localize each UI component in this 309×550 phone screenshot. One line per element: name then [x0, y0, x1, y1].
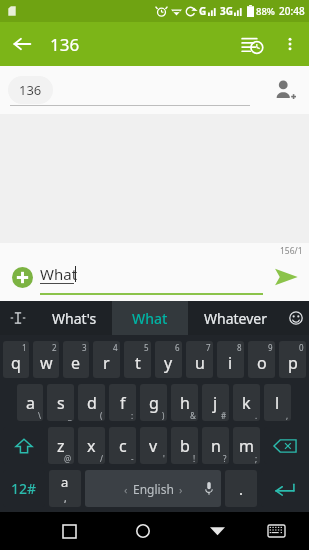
staticText: h — [180, 392, 190, 414]
button[interactable]: Shift — [3, 427, 44, 464]
button[interactable]: Backspace — [264, 427, 306, 464]
button[interactable]: Recents — [47, 512, 91, 550]
staticText: c — [119, 435, 127, 457]
button[interactable]: w — [33, 341, 59, 378]
button[interactable]: v — [140, 427, 167, 464]
button[interactable]: Scheduled messages — [231, 23, 273, 65]
staticText: _ — [68, 410, 72, 421]
button[interactable]: 136 — [8, 76, 53, 104]
button[interactable]: p — [279, 341, 306, 378]
staticText: - — [131, 453, 134, 464]
button[interactable]: u — [186, 341, 213, 378]
staticText: 136 — [50, 33, 80, 56]
button[interactable]: d — [78, 384, 105, 421]
button[interactable]: q — [3, 341, 29, 378]
staticText: f — [120, 392, 126, 414]
button[interactable]: More options — [273, 27, 307, 61]
button[interactable]: z — [48, 427, 74, 464]
button[interactable]: Attach — [6, 261, 38, 293]
staticText: k — [242, 392, 251, 414]
staticText: 4 — [113, 342, 118, 353]
button[interactable]: s — [47, 384, 74, 421]
button[interactable]: Whatever — [188, 301, 283, 335]
button[interactable]: What — [112, 301, 188, 335]
staticText: G — [199, 4, 207, 18]
button[interactable]: g — [140, 384, 167, 421]
button[interactable]: What's — [36, 301, 112, 335]
button[interactable]: e — [63, 341, 89, 378]
staticText: x — [87, 435, 96, 457]
button[interactable]: h — [171, 384, 198, 421]
staticText: 6 — [175, 342, 180, 353]
button[interactable]: m — [233, 427, 260, 464]
staticText: a — [61, 473, 69, 491]
button[interactable]: b — [171, 427, 198, 464]
staticText: What — [40, 264, 78, 284]
staticText: o — [257, 352, 267, 374]
button[interactable]: r — [93, 341, 120, 378]
button[interactable]: j — [202, 384, 229, 421]
button[interactable]: Add contact — [265, 70, 305, 110]
button[interactable]: Space — [85, 470, 221, 507]
button[interactable]: y — [155, 341, 182, 378]
button[interactable]: Accents — [49, 470, 81, 507]
button[interactable]: a — [17, 384, 43, 421]
staticText: . — [255, 410, 258, 421]
staticText: s — [57, 392, 65, 414]
button[interactable]: Emoji — [283, 301, 309, 335]
button[interactable]: Send — [263, 254, 309, 300]
staticText: ! — [193, 453, 196, 464]
staticText: ) — [162, 410, 165, 421]
staticText: 2 — [52, 342, 57, 353]
button[interactable]: Home — [121, 512, 165, 550]
button[interactable]: c — [109, 427, 136, 464]
staticText: 156/1 — [280, 245, 303, 257]
staticText: 0 — [299, 342, 304, 353]
button[interactable]: Enter — [261, 470, 306, 507]
staticText: 8 — [237, 342, 242, 353]
staticText: & — [190, 410, 196, 421]
staticText: English — [133, 481, 174, 497]
staticText: , — [286, 410, 289, 421]
button[interactable]: o — [248, 341, 275, 378]
button[interactable]: l — [264, 384, 291, 421]
staticText: What — [132, 309, 168, 328]
staticText: What's — [52, 309, 97, 328]
button[interactable]: Hide keyboard — [195, 512, 239, 550]
button[interactable]: Symbols — [3, 470, 45, 507]
staticText: ( — [100, 410, 103, 421]
staticText: p — [288, 352, 298, 374]
staticText: Whatever — [204, 309, 267, 328]
button[interactable]: i — [217, 341, 244, 378]
staticText: 7 — [206, 342, 211, 353]
staticText: n — [211, 435, 221, 457]
button[interactable]: x — [78, 427, 105, 464]
staticText: › — [179, 482, 183, 497]
button[interactable]: Switch keyboard — [254, 512, 298, 550]
staticText: . — [239, 479, 244, 499]
staticText: 88% — [256, 5, 275, 18]
button[interactable]: f — [109, 384, 136, 421]
staticText: m — [239, 435, 254, 457]
staticText: v — [149, 435, 158, 457]
staticText: t — [135, 352, 141, 374]
staticText: 1 — [22, 342, 27, 353]
staticText: q — [11, 352, 21, 374]
button[interactable]: n — [202, 427, 229, 464]
button[interactable]: Back — [0, 22, 44, 66]
staticText: i — [228, 352, 233, 374]
staticText: 3 — [82, 342, 87, 353]
staticText: 9 — [268, 342, 273, 353]
staticText: b — [180, 435, 190, 457]
button[interactable]: t — [124, 341, 151, 378]
staticText: 3G — [220, 4, 233, 18]
button[interactable]: k — [233, 384, 260, 421]
staticText: e — [71, 352, 81, 374]
button[interactable]: Period — [225, 470, 257, 507]
staticText: @ — [64, 453, 72, 464]
staticText: r — [103, 352, 110, 374]
staticText: : — [131, 410, 134, 421]
staticText: d — [87, 392, 97, 414]
button[interactable]: Move cursor — [0, 301, 36, 335]
staticText: ; — [255, 453, 258, 464]
